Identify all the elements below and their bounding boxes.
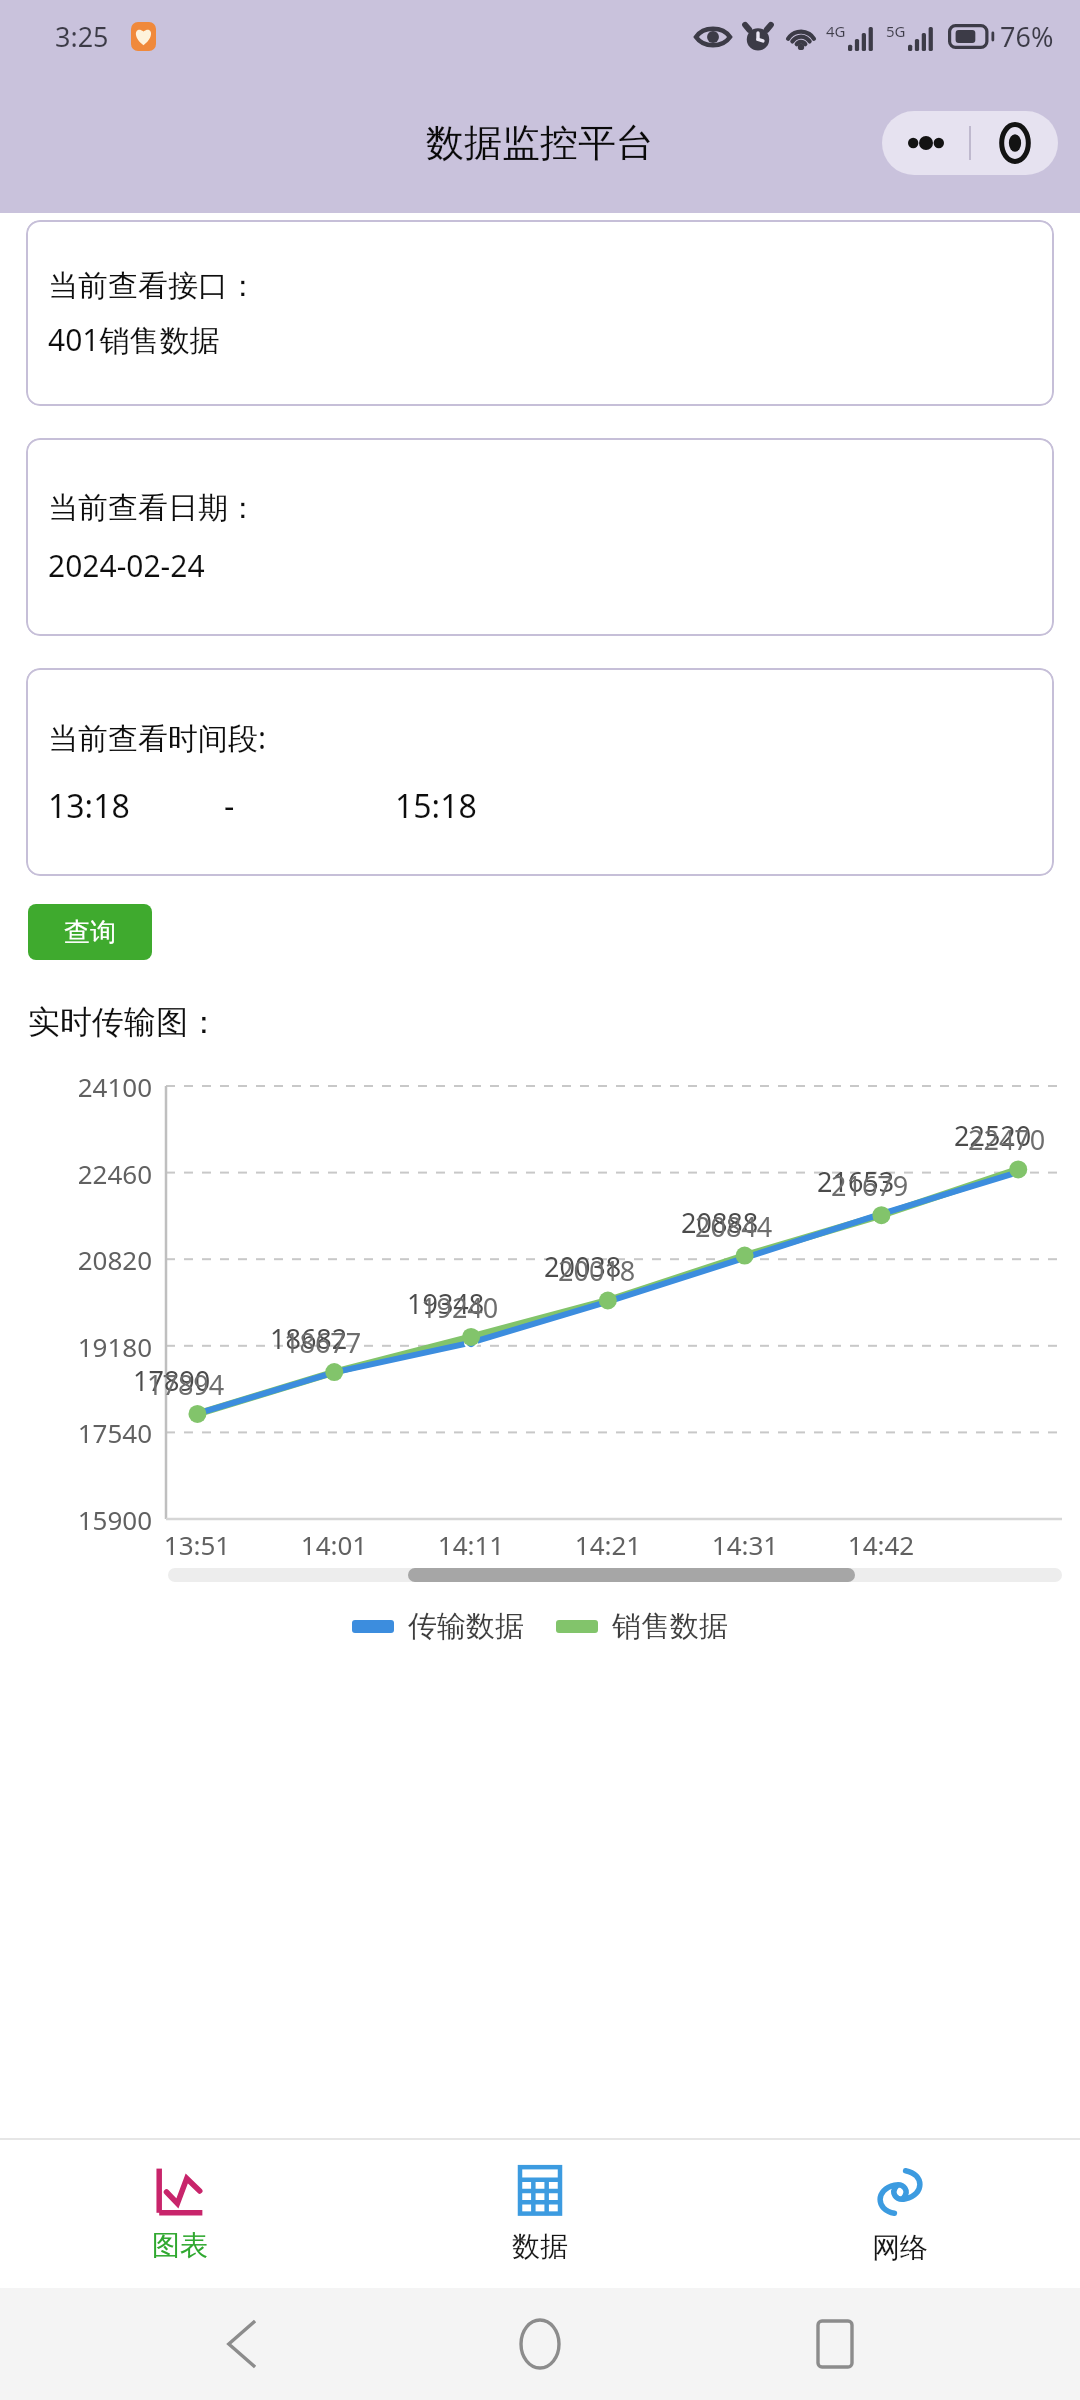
button[interactable]: Close mini program — [971, 111, 1058, 175]
button[interactable]: 查询 — [28, 904, 152, 960]
staticText: 15:18 — [395, 784, 477, 828]
staticText: 20844 — [695, 1208, 773, 1245]
staticText: - — [224, 784, 235, 828]
staticText: 14:01 — [274, 1527, 394, 1562]
button[interactable]: 当前查看时间段: — [26, 668, 1054, 876]
staticText: 当前查看接口： — [48, 267, 258, 305]
staticText: 4G — [826, 21, 846, 41]
staticText: 13:18 — [48, 784, 130, 828]
staticText: 19240 — [421, 1289, 499, 1326]
staticText: 17890 — [133, 1362, 211, 1399]
staticText: 17894 — [147, 1366, 225, 1403]
staticText: 2024-02-24 — [48, 545, 205, 586]
staticText: 13:51 — [137, 1527, 257, 1562]
staticText: 图表 — [152, 2228, 208, 2263]
staticText: 当前查看日期： — [48, 489, 258, 527]
staticText: 5G — [886, 21, 906, 41]
staticText: 14:31 — [685, 1527, 805, 1562]
staticText: 网络 — [872, 2230, 928, 2265]
staticText: 19180 — [40, 1329, 152, 1364]
staticText: 20820 — [40, 1242, 152, 1277]
staticText: 15900 — [40, 1502, 152, 1537]
button[interactable]: 当前查看接口： — [26, 220, 1054, 406]
staticText: 14:11 — [411, 1527, 531, 1562]
button[interactable]: 数据 — [360, 2140, 720, 2288]
button[interactable]: Back — [195, 2294, 295, 2394]
staticText: 实时传输图： — [28, 1002, 220, 1042]
staticText: 传输数据 — [408, 1608, 524, 1645]
staticText: 401销售数据 — [48, 319, 220, 360]
staticText: 查询 — [64, 916, 116, 949]
button[interactable]: 当前查看日期： — [26, 438, 1054, 636]
staticText: 销售数据 — [612, 1608, 728, 1645]
staticText: 14:21 — [548, 1527, 668, 1562]
button[interactable]: Home — [490, 2294, 590, 2394]
staticText: 17540 — [40, 1415, 152, 1450]
staticText: 18682 — [270, 1320, 348, 1357]
staticText: 22520 — [954, 1117, 1032, 1154]
button[interactable]: 网络 — [720, 2140, 1080, 2288]
staticText: 数据 — [512, 2229, 568, 2264]
staticText: 22470 — [968, 1121, 1046, 1158]
button[interactable]: Recent apps — [785, 2294, 885, 2394]
button[interactable]: More options — [882, 111, 969, 175]
staticText: 20038 — [544, 1248, 622, 1285]
staticText: 24100 — [40, 1069, 152, 1104]
staticText: 18677 — [284, 1324, 362, 1361]
staticText: 20018 — [558, 1252, 636, 1289]
staticText: 3:25 — [55, 18, 109, 55]
staticText: 19348 — [407, 1285, 485, 1322]
staticText: 76% — [1000, 18, 1054, 55]
button[interactable]: 图表 — [0, 2140, 360, 2288]
staticText: 21653 — [817, 1163, 895, 1200]
staticText: 14:42 — [821, 1527, 941, 1562]
staticText: 当前查看时间段: — [48, 717, 267, 758]
staticText: 21679 — [831, 1167, 909, 1204]
staticText: 22460 — [40, 1156, 152, 1191]
staticText: 20888 — [681, 1204, 759, 1241]
staticText: 数据监控平台 — [426, 119, 654, 167]
